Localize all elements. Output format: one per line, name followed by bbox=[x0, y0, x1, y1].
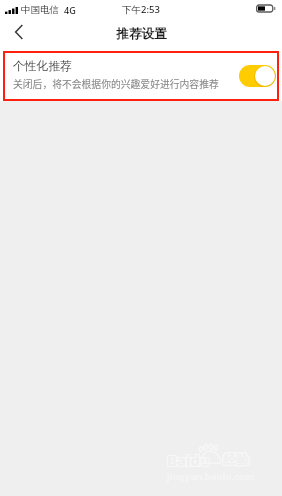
button[interactable]: 返回 bbox=[0, 15, 37, 48]
staticText: 个性化推荐 bbox=[13, 59, 72, 74]
staticText: Baidu bbox=[166, 451, 209, 471]
staticText: Baidu bbox=[168, 451, 211, 471]
staticText: Baidu bbox=[167, 449, 210, 469]
staticText: Baidu bbox=[168, 449, 211, 469]
staticText: Baidu bbox=[167, 451, 210, 471]
staticText: Baidu bbox=[167, 450, 210, 470]
staticText: Baidu bbox=[166, 449, 209, 469]
button[interactable]: 个性化推荐 bbox=[0, 51, 282, 101]
staticText: Baidu bbox=[168, 450, 211, 470]
staticText: 中国电信 bbox=[21, 4, 59, 16]
staticText: 下午2:53 bbox=[122, 3, 160, 16]
staticText: Baidu bbox=[166, 450, 209, 470]
staticText: 关闭后，将不会根据你的兴趣爱好进行内容推荐 bbox=[13, 77, 219, 91]
staticText: 4G bbox=[64, 4, 76, 16]
staticText: Baidu bbox=[167, 450, 210, 470]
staticText: 推荐设置 bbox=[116, 26, 167, 42]
button[interactable]: 个性化推荐开关 bbox=[239, 65, 276, 87]
